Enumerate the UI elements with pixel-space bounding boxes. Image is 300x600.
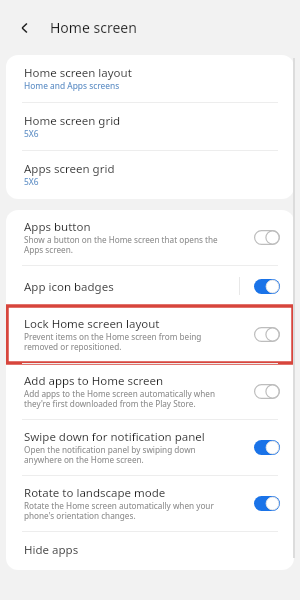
staticText: Add apps to Home screen <box>24 374 164 387</box>
button[interactable]: App icon badges <box>6 266 294 306</box>
staticText: Rotate the Home screen automatically whe… <box>24 501 214 521</box>
button[interactable]: Home screen layout <box>6 55 294 102</box>
staticText: Rotate to landscape mode <box>24 486 166 499</box>
button[interactable]: Lock Home screen layout <box>6 306 294 363</box>
staticText: 5X6 <box>24 129 39 140</box>
staticText: Lock Home screen layout <box>24 317 160 330</box>
staticText: Apps button <box>24 220 91 233</box>
staticText: Show a button on the Home screen that op… <box>24 235 218 255</box>
staticText: Swipe down for notification panel <box>24 430 205 443</box>
staticText: Home screen layout <box>24 66 132 79</box>
staticText: Add apps to the Home screen automaticall… <box>24 389 215 409</box>
button[interactable]: Add apps to Home screen <box>6 364 294 419</box>
staticText: Home and Apps screens <box>24 81 120 92</box>
button[interactable]: Home screen grid <box>6 103 294 150</box>
button[interactable]: Swipe down for notification panel <box>6 420 294 475</box>
button[interactable]: Apps screen grid <box>6 151 294 199</box>
button[interactable]: Rotate to landscape mode <box>6 476 294 531</box>
staticText: 5X6 <box>24 177 39 188</box>
staticText: Prevent items on the Home screen from be… <box>24 332 202 352</box>
staticText: Home screen grid <box>24 114 121 127</box>
staticText: Home screen <box>50 18 137 37</box>
staticText: Open the notification panel by swiping d… <box>24 445 196 465</box>
staticText: Hide apps <box>24 543 79 556</box>
button[interactable]: Hide apps <box>6 532 294 570</box>
button[interactable]: Apps button <box>6 210 294 265</box>
staticText: Apps screen grid <box>24 162 115 175</box>
button[interactable]: Back <box>8 11 42 45</box>
staticText: App icon badges <box>24 280 114 293</box>
